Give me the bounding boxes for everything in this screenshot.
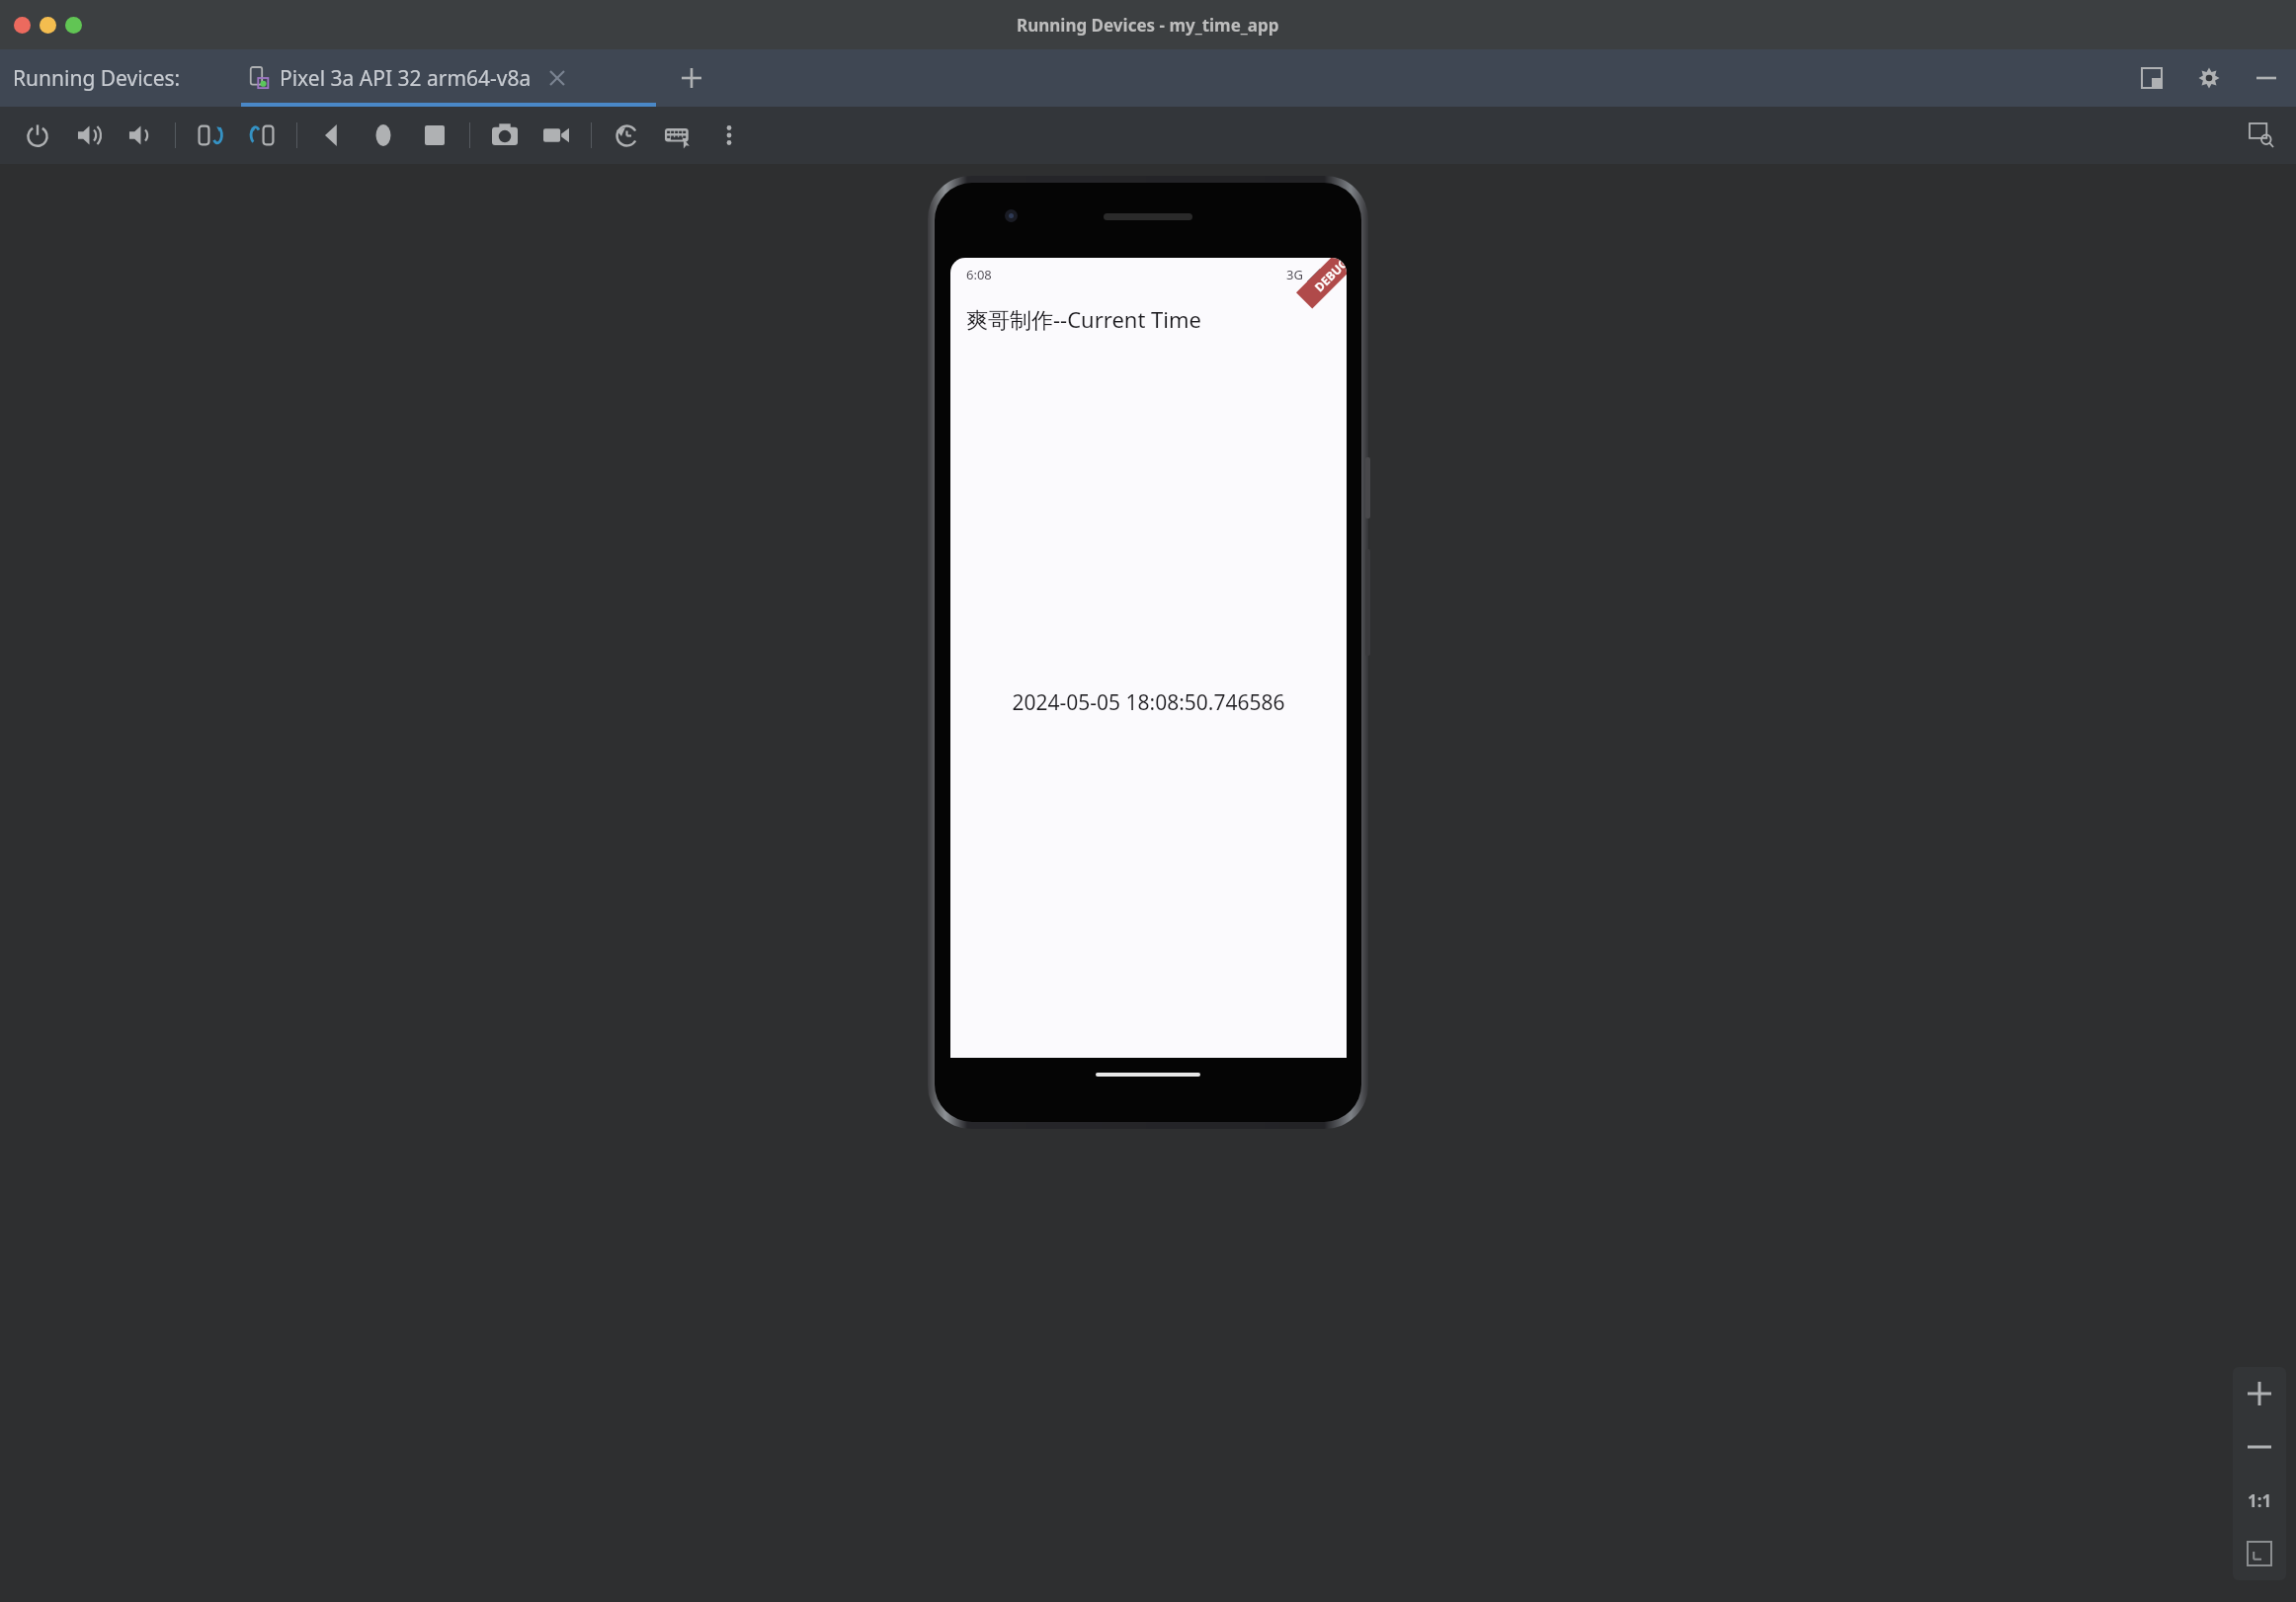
- button[interactable]: Back: [306, 113, 358, 158]
- button[interactable]: Maximize: [65, 17, 82, 34]
- staticText: 1:1: [2248, 1489, 2272, 1512]
- button[interactable]: Close tab: [544, 65, 570, 91]
- button[interactable]: Zoom out: [2233, 1420, 2286, 1474]
- button[interactable]: Keyboard: [652, 113, 703, 158]
- button[interactable]: Volume up: [63, 113, 115, 158]
- button[interactable]: Zoom in: [2233, 1367, 2286, 1420]
- staticText: 2024-05-05 18:08:50.746586: [1012, 688, 1285, 717]
- button[interactable]: Screenshot: [479, 113, 531, 158]
- button[interactable]: Rotate right: [236, 113, 287, 158]
- staticText: DEBUG: [1311, 258, 1347, 295]
- button[interactable]: Record screen: [531, 113, 582, 158]
- staticText: 3G: [1286, 266, 1303, 283]
- button[interactable]: 1:1: [2233, 1474, 2286, 1527]
- button[interactable]: Volume down: [115, 113, 166, 158]
- button[interactable]: Close: [14, 17, 31, 34]
- button[interactable]: Add device: [672, 58, 711, 98]
- button[interactable]: Power: [12, 113, 63, 158]
- button[interactable]: Rotate left: [185, 113, 236, 158]
- button[interactable]: Split layout: [2136, 62, 2168, 94]
- button[interactable]: Inspect: [2245, 119, 2278, 152]
- staticText: 爽哥制作--Current Time: [966, 304, 1201, 334]
- button[interactable]: Back navigation history: [601, 113, 652, 158]
- button[interactable]: Pixel 3a API 32 arm64-v8a: [249, 49, 570, 107]
- button[interactable]: Minimize panel: [2251, 62, 2282, 94]
- staticText: Running Devices - my_time_app: [1017, 14, 1279, 37]
- button[interactable]: Zoom to fit: [2233, 1527, 2286, 1580]
- button[interactable]: More: [703, 113, 755, 158]
- button[interactable]: Overview: [409, 113, 460, 158]
- button[interactable]: Minimize: [40, 17, 56, 34]
- button[interactable]: Home: [358, 113, 409, 158]
- button[interactable]: Settings: [2193, 62, 2225, 94]
- staticText: 6:08: [966, 266, 992, 283]
- staticText: Running Devices:: [13, 64, 181, 93]
- staticText: Pixel 3a API 32 arm64-v8a: [280, 64, 532, 93]
